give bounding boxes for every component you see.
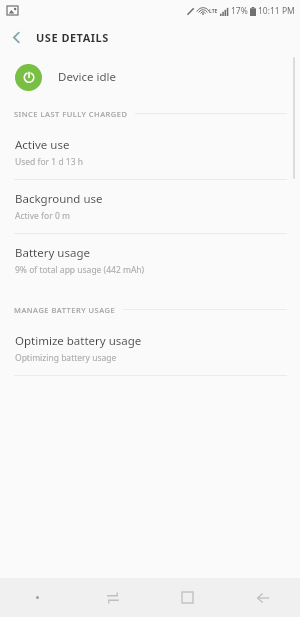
staticText: SINCE LAST FULLY CHARGED — [14, 109, 128, 119]
button[interactable]: Home — [150, 578, 225, 617]
button[interactable]: Active use — [0, 126, 300, 179]
button[interactable]: Back — [225, 578, 300, 617]
staticText: Battery usage — [15, 245, 90, 261]
staticText: USE DETAILS — [36, 30, 109, 45]
button[interactable]: Device idle — [0, 53, 300, 101]
staticText: 9% of total app usage (442 mAh) — [15, 264, 145, 276]
staticText: Optimize battery usage — [15, 333, 142, 349]
staticText: MANAGE BATTERY USAGE — [14, 305, 116, 315]
staticText: 10:11 PM — [258, 5, 295, 17]
staticText: Background use — [15, 191, 103, 207]
staticText: LTE — [209, 8, 218, 15]
button[interactable]: Battery usage — [0, 234, 300, 287]
button[interactable]: Menu — [0, 578, 75, 617]
staticText: 17% — [231, 5, 248, 17]
button[interactable]: Recent apps — [75, 578, 150, 617]
button[interactable]: Back — [0, 21, 32, 53]
staticText: Device idle — [58, 69, 116, 85]
staticText: Optimizing battery usage — [15, 352, 117, 364]
staticText: Used for 1 d 13 h — [15, 156, 84, 168]
staticText: Active for 0 m — [15, 210, 70, 222]
button[interactable]: Optimize battery usage — [0, 322, 300, 375]
staticText: Active use — [15, 137, 70, 153]
button[interactable]: Background use — [0, 180, 300, 233]
